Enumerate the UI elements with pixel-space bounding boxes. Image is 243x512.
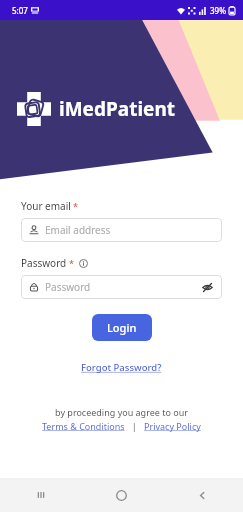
staticText: 5:07 bbox=[12, 5, 28, 16]
staticText: Forgot Password? bbox=[81, 361, 162, 374]
button[interactable]: Terms & Conditions bbox=[40, 420, 127, 432]
button[interactable]: Back bbox=[162, 478, 243, 512]
button[interactable]: Password bbox=[21, 275, 222, 299]
staticText: * bbox=[73, 200, 78, 212]
staticText: Terms & Conditions bbox=[42, 420, 125, 432]
button[interactable]: Email address bbox=[21, 218, 222, 242]
staticText: by proceeding you agree to our bbox=[55, 406, 188, 418]
button[interactable]: Login bbox=[92, 314, 152, 341]
staticText: Login bbox=[107, 320, 137, 335]
staticText: Your email bbox=[21, 199, 71, 213]
button[interactable]: Home bbox=[81, 478, 162, 512]
button[interactable]: Show password bbox=[200, 280, 214, 294]
button[interactable]: Privacy Policy bbox=[142, 420, 203, 432]
staticText: Password bbox=[21, 256, 67, 270]
staticText: * bbox=[69, 257, 74, 269]
staticText: Email address bbox=[45, 223, 214, 237]
staticText: Privacy Policy bbox=[144, 420, 201, 432]
staticText: 39% bbox=[210, 5, 226, 16]
button[interactable]: Forgot Password? bbox=[77, 357, 166, 378]
staticText: iMedPatient bbox=[59, 96, 175, 122]
staticText: Password bbox=[45, 280, 200, 294]
button[interactable]: Recent apps bbox=[0, 478, 81, 512]
staticText: | bbox=[127, 420, 142, 432]
